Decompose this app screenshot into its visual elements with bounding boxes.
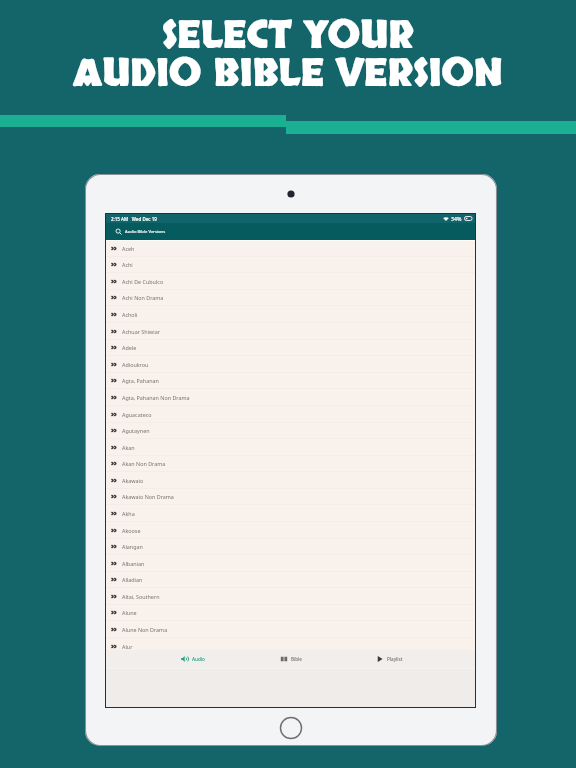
button[interactable]: Adele [106,339,475,356]
staticText: Acholi [122,311,138,318]
staticText: Achuar Shiwiar [122,328,160,335]
staticText: Akoose [122,527,141,534]
button[interactable]: Agta, Pahanan [106,372,475,389]
staticText: Akan Non Drama [122,460,166,467]
button[interactable]: Akan Non Drama [106,455,475,472]
button[interactable]: Aceh [106,240,475,257]
button[interactable]: Akan [106,439,475,456]
staticText: Agta, Pahanan Non Drama [122,394,190,401]
button[interactable]: Aguacateco [106,406,475,423]
button[interactable]: Acholi [106,306,475,323]
staticText: Achi Non Drama [122,294,164,301]
button[interactable]: Bible [278,650,304,668]
staticText: Alangan [122,543,143,550]
staticText: Akha [122,510,135,517]
button[interactable]: Playlist [374,650,405,668]
staticText: Audio [192,656,205,662]
button[interactable]: Agutaynen [106,422,475,439]
staticText: Alladian [122,576,143,583]
staticText: Audio Bible Versions [125,229,166,235]
button[interactable]: Akoose [106,522,475,539]
button[interactable]: Albanian [106,555,475,572]
staticText: Agta, Pahanan [122,377,159,384]
staticText: AUDIO BIBLE VERSION [73,49,503,99]
staticText: Alune [122,609,137,616]
button[interactable]: Audio Bible Versions [106,223,475,240]
staticText: 2:15 AM Wed Dec 19 [111,216,157,222]
staticText: Adele [122,344,137,351]
button[interactable]: Agta, Pahanan Non Drama [106,389,475,406]
staticText: Playlist [387,656,403,662]
staticText: Alune Non Drama [122,626,168,633]
staticText: Achi [122,261,133,268]
staticText: Agutaynen [122,427,150,434]
button[interactable]: Adioukrou [106,356,475,373]
staticText: Aceh [122,245,135,252]
button[interactable]: Akawaio Non Drama [106,488,475,505]
button[interactable]: Audio [179,650,207,668]
staticText: 34% [451,215,462,222]
staticText: Akawaio Non Drama [122,493,174,500]
button[interactable]: Achi Non Drama [106,289,475,306]
button[interactable]: Alune Non Drama [106,621,475,638]
staticText: Altai, Southern [122,593,160,600]
button[interactable]: Alangan [106,538,475,555]
button[interactable]: Alur [106,638,475,655]
staticText: Adioukrou [122,361,149,368]
button[interactable]: Achuar Shiwiar [106,323,475,340]
staticText: Alur [122,643,133,650]
staticText: Akawaio [122,477,144,484]
staticText: Bible [291,656,302,662]
button[interactable]: Akha [106,505,475,522]
staticText: SELECT YOUR [162,11,414,61]
button[interactable]: Achi De Cubulco [106,273,475,290]
staticText: Akan [122,444,135,451]
staticText: Achi De Cubulco [122,278,164,285]
button[interactable]: Achi [106,256,475,273]
button[interactable]: Altai, Southern [106,588,475,605]
staticText: Aguacateco [122,411,152,418]
staticText: Albanian [122,560,145,567]
button[interactable]: Alladian [106,571,475,588]
button[interactable]: Alune [106,604,475,621]
button[interactable]: Akawaio [106,472,475,489]
